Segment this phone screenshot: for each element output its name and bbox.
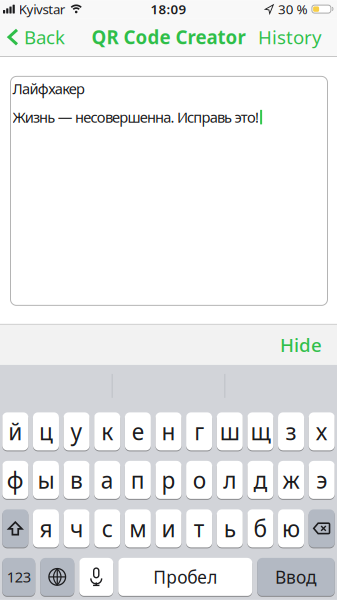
button[interactable]: д xyxy=(247,461,273,499)
button[interactable]: с xyxy=(94,509,120,547)
button[interactable]: г xyxy=(186,412,212,450)
staticText: QR Code Creator xyxy=(91,25,245,49)
staticText: 123 xyxy=(7,567,31,587)
button[interactable]: ж xyxy=(278,461,304,499)
staticText: Hide xyxy=(280,332,322,357)
button[interactable]: Space xyxy=(118,558,252,596)
button[interactable]: History xyxy=(258,25,337,49)
button[interactable]: ф xyxy=(2,461,28,499)
staticText: б xyxy=(253,513,267,543)
staticText: э xyxy=(316,465,327,495)
button[interactable]: Dictate xyxy=(79,558,113,596)
staticText: Жизнь — несовершенна. Исправь это! xyxy=(12,107,259,127)
button[interactable]: е xyxy=(125,412,151,450)
button[interactable]: ч xyxy=(64,509,90,547)
staticText: н xyxy=(161,416,175,446)
button[interactable]: и xyxy=(155,509,181,547)
button[interactable]: й xyxy=(2,412,28,450)
button[interactable]: я xyxy=(33,509,59,547)
staticText: я xyxy=(39,513,52,543)
button[interactable]: э xyxy=(309,461,335,499)
staticText: 30 % xyxy=(278,0,307,18)
staticText: Ввод xyxy=(275,565,317,588)
staticText: л xyxy=(223,465,236,495)
staticText: с xyxy=(102,513,113,543)
button[interactable]: з xyxy=(278,412,304,450)
button[interactable]: у xyxy=(64,412,90,450)
button[interactable]: щ xyxy=(247,412,273,450)
staticText: т xyxy=(194,513,205,543)
button[interactable]: х xyxy=(309,412,335,450)
staticText: м xyxy=(129,513,146,543)
button[interactable]: Delete xyxy=(309,509,335,547)
staticText: о xyxy=(193,465,206,495)
button[interactable]: Next keyboard xyxy=(40,558,74,596)
staticText: Пробел xyxy=(153,565,217,588)
staticText: к xyxy=(101,416,113,446)
staticText: ш xyxy=(220,416,240,446)
button[interactable]: т xyxy=(186,509,212,547)
staticText: у xyxy=(71,416,83,446)
staticText: ж xyxy=(282,465,299,495)
staticText: ц xyxy=(39,416,53,446)
staticText: й xyxy=(8,416,22,446)
staticText: ь xyxy=(224,513,236,543)
button[interactable]: м xyxy=(125,509,151,547)
button[interactable]: п xyxy=(125,461,151,499)
staticText: в xyxy=(70,465,83,495)
button[interactable]: в xyxy=(64,461,90,499)
staticText: е xyxy=(132,416,144,446)
button[interactable]: ц xyxy=(33,412,59,450)
staticText: ф xyxy=(7,465,24,495)
button[interactable]: б xyxy=(247,509,273,547)
button[interactable]: р xyxy=(155,461,181,499)
staticText: ч xyxy=(70,513,83,543)
staticText: з xyxy=(285,416,296,446)
staticText: а xyxy=(101,465,114,495)
button[interactable]: Hide xyxy=(280,332,337,357)
button[interactable]: ы xyxy=(33,461,59,499)
staticText: Kyivstar xyxy=(19,0,66,18)
staticText: History xyxy=(258,25,322,49)
staticText: д xyxy=(253,465,267,495)
button[interactable]: ш xyxy=(217,412,243,450)
staticText: 18:09 xyxy=(150,0,186,18)
button[interactable]: к xyxy=(94,412,120,450)
staticText: щ xyxy=(250,416,270,446)
staticText: х xyxy=(316,416,328,446)
button[interactable]: о xyxy=(186,461,212,499)
staticText: р xyxy=(161,465,175,495)
staticText: ы xyxy=(37,465,54,495)
button[interactable]: ь xyxy=(217,509,243,547)
staticText: ю xyxy=(282,513,300,543)
staticText: и xyxy=(161,513,175,543)
staticText: г xyxy=(194,416,204,446)
button[interactable]: Return xyxy=(257,558,335,596)
button[interactable]: л xyxy=(217,461,243,499)
button[interactable]: а xyxy=(94,461,120,499)
staticText: Back xyxy=(24,25,65,49)
button[interactable]: н xyxy=(155,412,181,450)
button[interactable]: Shift xyxy=(2,509,28,547)
button[interactable]: ю xyxy=(278,509,304,547)
staticText: Лайфхакер xyxy=(12,79,85,98)
staticText: п xyxy=(131,465,145,495)
button[interactable]: Numbers xyxy=(2,558,35,596)
button[interactable]: Back xyxy=(0,25,65,49)
